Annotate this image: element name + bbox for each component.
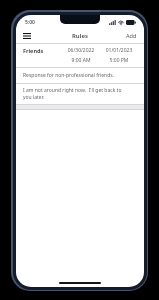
- button[interactable]: Menu: [16, 29, 38, 43]
- staticText: 5:00 PM: [100, 57, 138, 64]
- button[interactable]: Friends: [16, 43, 144, 104]
- staticText: 06/30/2022: [62, 47, 100, 54]
- button[interactable]: Add: [119, 28, 144, 43]
- staticText: I am not around right now. I'll get back…: [23, 87, 130, 101]
- staticText: Rules: [72, 32, 88, 40]
- staticText: Add: [126, 32, 137, 39]
- staticText: Response for non-professional friends.: [23, 72, 114, 79]
- staticText: 01/01/2023: [100, 47, 138, 54]
- staticText: Friends: [23, 47, 62, 54]
- staticText: 5:00: [25, 19, 35, 26]
- staticText: 9:00 AM: [62, 57, 100, 64]
